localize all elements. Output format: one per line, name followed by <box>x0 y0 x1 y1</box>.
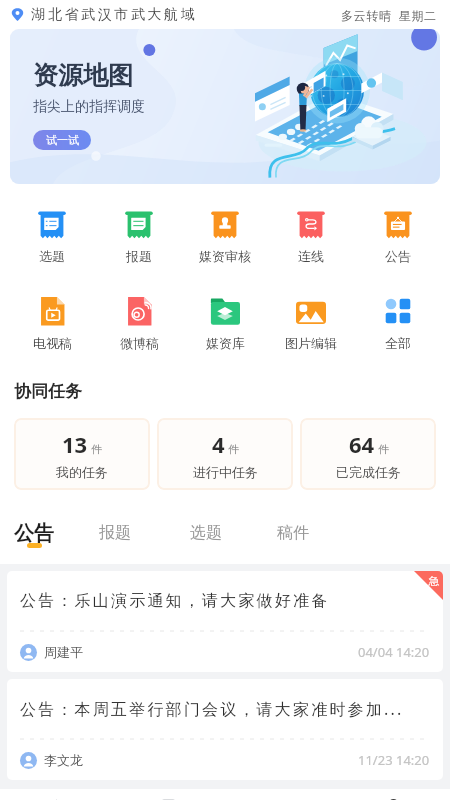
button[interactable]: 报题 <box>101 209 177 264</box>
button[interactable]: 64 <box>300 418 436 490</box>
staticText: 李文龙 <box>44 752 83 768</box>
staticText: 资源地图 <box>33 60 133 91</box>
button[interactable]: 资源地图 <box>10 29 440 184</box>
staticText: 11/23 14:20 <box>358 751 430 769</box>
staticText: 湖北省武汉市武大航域 <box>30 6 196 24</box>
button[interactable]: 选题 <box>14 209 90 264</box>
staticText: 协同任务 <box>14 381 82 402</box>
staticText: 我的任务 <box>56 464 108 480</box>
button[interactable]: 图片编辑 <box>273 296 349 351</box>
staticText: 64 <box>349 429 375 459</box>
button[interactable]: 全部 <box>360 296 436 351</box>
staticText: 急 <box>428 574 439 588</box>
staticText: 04/04 14:20 <box>358 643 430 661</box>
button[interactable]: 4 <box>157 418 293 490</box>
button[interactable]: 媒资库 <box>187 296 263 351</box>
staticText: 报题 <box>126 248 152 264</box>
button[interactable]: 电视稿 <box>14 296 90 351</box>
button[interactable]: 报题 <box>99 523 131 546</box>
button[interactable]: 13 <box>14 418 150 490</box>
staticText: 13 <box>62 429 88 459</box>
staticText: 已完成任务 <box>336 464 401 480</box>
button[interactable]: 公告：本周五举行部门会议，请大家准时参加... <box>7 679 443 780</box>
staticText: 选题 <box>39 248 65 264</box>
button[interactable]: 选题 <box>190 523 222 546</box>
staticText: 电视稿 <box>33 335 72 351</box>
staticText: 件 <box>378 442 389 456</box>
button[interactable]: 公告 <box>360 209 436 264</box>
button[interactable]: 公告：乐山演示通知，请大家做好准备 <box>7 571 443 672</box>
button[interactable]: 媒资审核 <box>187 209 263 264</box>
staticText: 试一试 <box>46 133 79 147</box>
button[interactable]: 公告 <box>14 521 54 546</box>
staticText: 多云转晴 星期二 <box>341 7 437 23</box>
staticText: 进行中任务 <box>193 464 258 480</box>
button[interactable]: 任务 <box>112 789 224 800</box>
staticText: 4 <box>212 429 225 459</box>
staticText: 周建平 <box>44 644 83 660</box>
staticText: 公告：本周五举行部门会议，请大家准时参加... <box>20 698 404 720</box>
button[interactable]: 微博稿 <box>101 296 177 351</box>
staticText: 图片编辑 <box>285 335 337 351</box>
button[interactable]: 我的 <box>337 789 450 800</box>
staticText: 媒资审核 <box>199 248 251 264</box>
other: Location <box>11 8 24 21</box>
button[interactable]: 试一试 <box>33 130 91 150</box>
button[interactable]: 连线 <box>273 209 349 264</box>
staticText: 公告 <box>14 521 54 546</box>
staticText: 全部 <box>385 335 411 351</box>
staticText: 公告：乐山演示通知，请大家做好准备 <box>20 591 330 611</box>
staticText: 公告 <box>385 248 411 264</box>
staticText: 指尖上的指挥调度 <box>33 98 145 116</box>
staticText: 连线 <box>298 248 324 264</box>
staticText: 件 <box>228 442 239 456</box>
staticText: 微博稿 <box>120 335 159 351</box>
staticText: 媒资库 <box>206 335 245 351</box>
staticText: 件 <box>91 442 102 456</box>
button[interactable]: 稿件 <box>277 523 309 546</box>
